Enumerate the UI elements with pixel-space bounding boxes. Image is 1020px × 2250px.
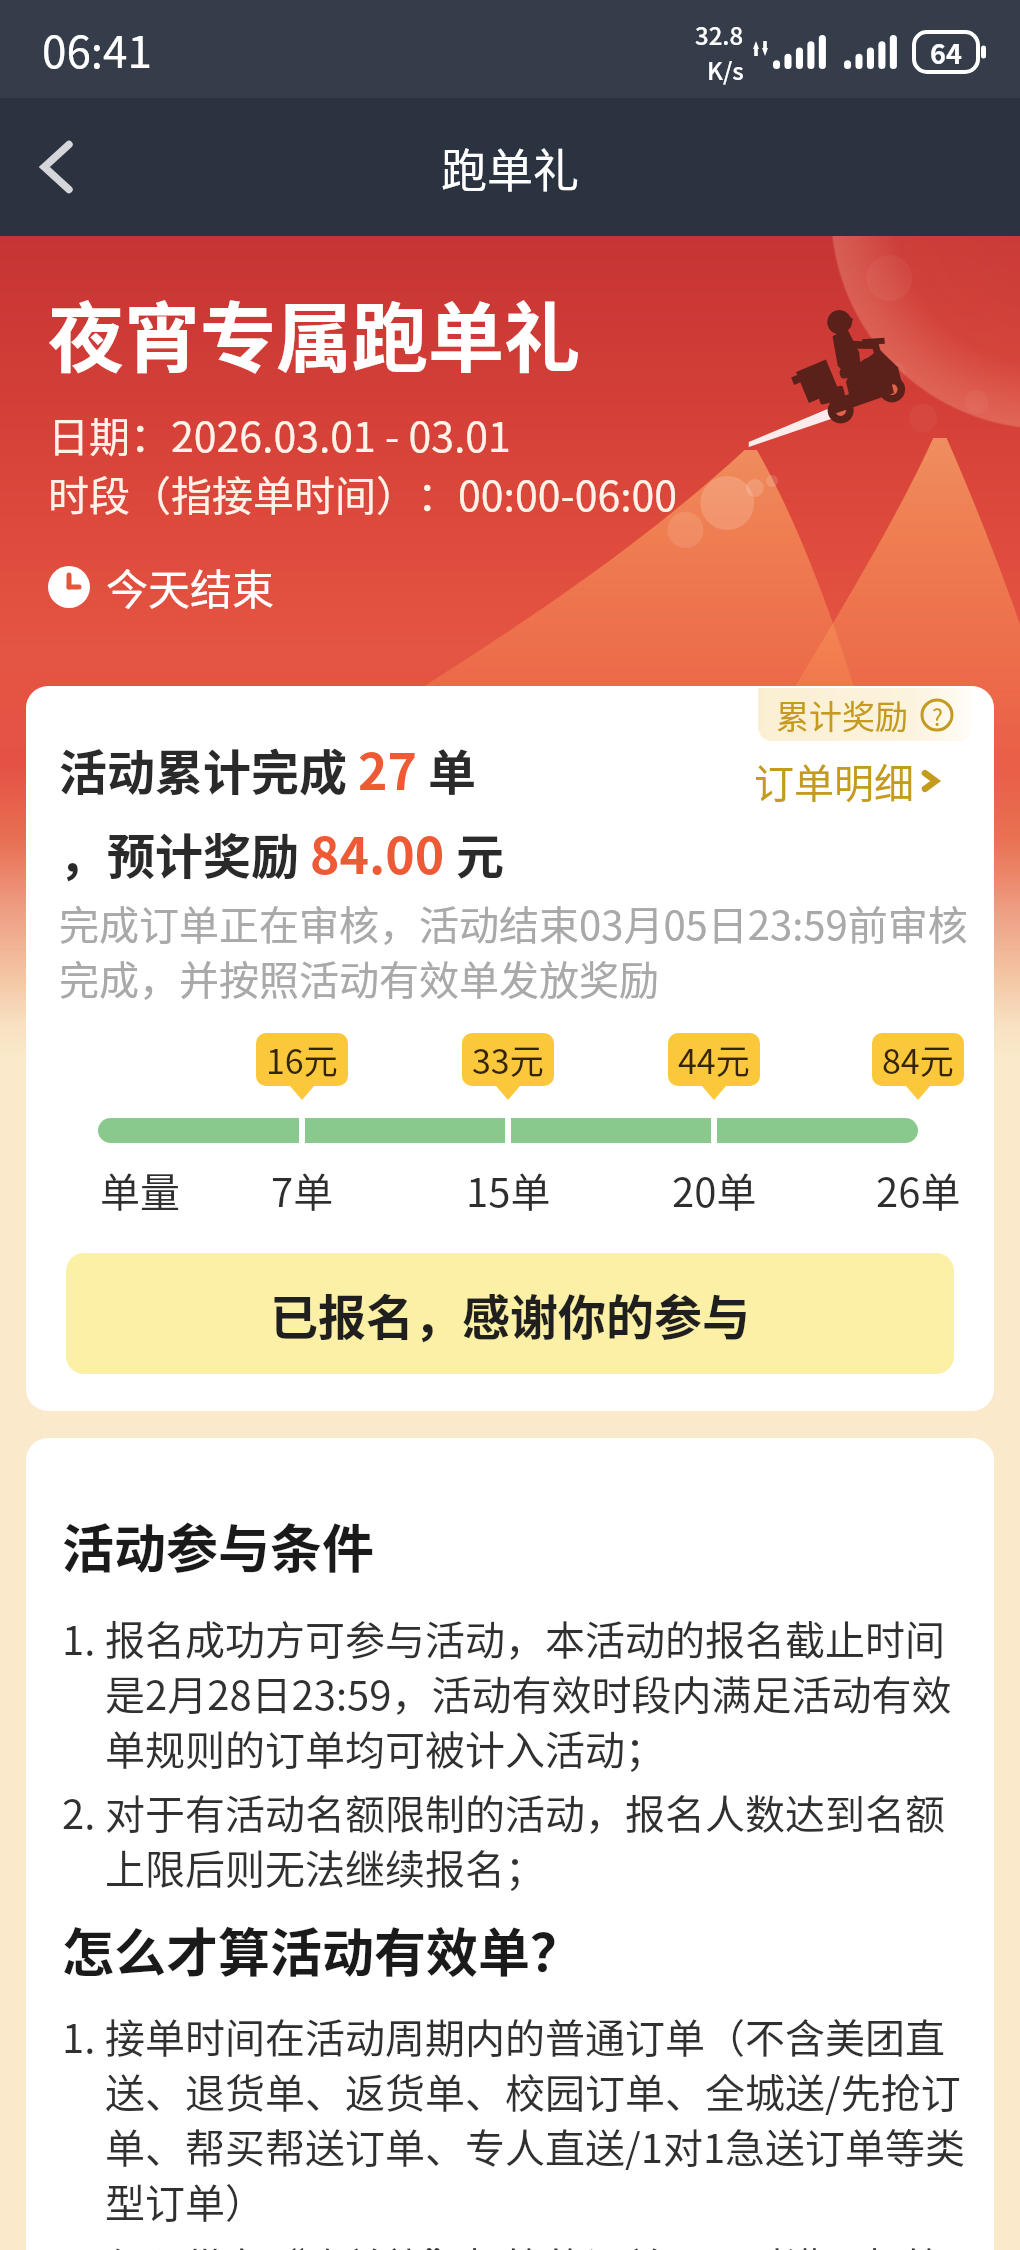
- staticText: 20单: [672, 1161, 757, 1219]
- staticText: 1.: [62, 2007, 105, 2065]
- staticText: 活动参与条件: [62, 1508, 375, 1583]
- staticText: K/s: [707, 52, 744, 87]
- staticText: 单量: [100, 1161, 180, 1219]
- staticText: 44元: [678, 1035, 750, 1084]
- button[interactable]: 已报名，感谢你的参与: [66, 1253, 954, 1374]
- staticText: 06:41: [42, 17, 152, 81]
- staticText: 时段（指接单时间）：00:00-06:00: [48, 463, 678, 522]
- staticText: 夜宵专属跑单礼: [48, 278, 580, 388]
- button[interactable]: 订单明细: [754, 752, 944, 810]
- staticText: 27: [358, 732, 417, 804]
- staticText: 32.8: [695, 17, 744, 52]
- staticText: 对于有活动名额限制的活动，报名人数达到名额上限后则无法继续报名；: [105, 1783, 968, 1896]
- staticText: 报名成功方可参与活动，本活动的报名截止时间是2月28日23:59，活动有效时段内…: [105, 1609, 968, 1777]
- staticText: 16元: [266, 1035, 338, 1084]
- staticText: 跑单礼: [441, 134, 579, 201]
- staticText: 33元: [472, 1035, 544, 1084]
- staticText: 元: [445, 818, 504, 888]
- staticText: 累计奖励: [776, 691, 908, 739]
- staticText: 15单: [466, 1161, 551, 1219]
- staticText: 订单明细: [754, 752, 914, 810]
- button[interactable]: Back: [10, 117, 110, 217]
- staticText: 2.: [62, 1783, 105, 1841]
- staticText: 7单: [271, 1161, 334, 1219]
- button[interactable]: 累计奖励: [758, 688, 972, 741]
- staticText: 64: [930, 33, 962, 72]
- staticText: ?: [932, 699, 943, 732]
- staticText: 日期：2026.03.01 - 03.01: [48, 404, 511, 463]
- staticText: 怎么才算活动有效单？: [62, 1912, 583, 1987]
- staticText: 已报名，感谢你的参与: [270, 1279, 751, 1349]
- staticText: 1.: [62, 1609, 105, 1667]
- staticText: 今天结束: [106, 556, 275, 617]
- staticText: 仅限带有“跑单礼”标签的订单，同时满足标签说明: [105, 2236, 968, 2250]
- staticText: 84元: [882, 1035, 954, 1084]
- staticText: 接单时间在活动周期内的普通订单（不含美团直送、退货单、返货单、校园订单、全城送/…: [105, 2007, 968, 2230]
- staticText: 单: [417, 734, 476, 804]
- staticText: 完成订单正在审核，活动结束03月05日23:59前审核完成，并按照活动有效单发放…: [59, 894, 976, 1007]
- staticText: 活动累计完成: [59, 734, 358, 804]
- staticText: 84.00: [310, 816, 445, 888]
- staticText: ，预计奖励: [59, 818, 310, 888]
- staticText: 26单: [876, 1161, 961, 1219]
